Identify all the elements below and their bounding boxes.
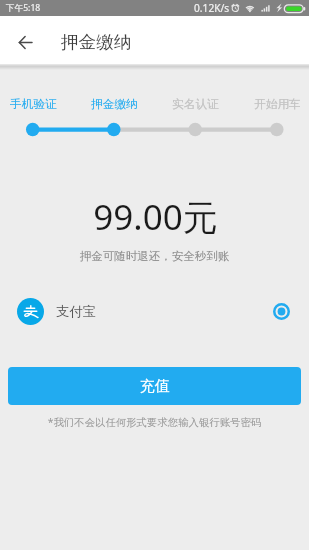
- staticText: 充值: [140, 377, 170, 396]
- staticText: 开始用车: [254, 97, 301, 112]
- staticText: *我们不会以任何形式要求您输入银行账号密码: [0, 415, 309, 429]
- staticText: 押金缴纳: [61, 31, 132, 53]
- button[interactable]: Back: [0, 16, 48, 64]
- staticText: 下午5:18: [6, 2, 41, 14]
- button[interactable]: 实名认证: [169, 97, 221, 112]
- staticText: 99.00元: [1, 193, 309, 241]
- button[interactable]: 开始用车: [251, 97, 303, 112]
- staticText: 押金缴纳: [91, 97, 138, 112]
- staticText: 实名认证: [172, 97, 219, 112]
- button[interactable]: 充值: [8, 367, 301, 405]
- button[interactable]: 手机验证: [7, 97, 59, 112]
- staticText: 0.12K/s: [194, 1, 230, 15]
- staticText: 支付宝: [56, 303, 96, 320]
- staticText: 押金可随时退还，安全秒到账: [0, 249, 309, 263]
- button[interactable]: 支付宝: [0, 288, 309, 334]
- button[interactable]: 押金缴纳: [88, 97, 140, 112]
- staticText: 手机验证: [10, 97, 57, 112]
